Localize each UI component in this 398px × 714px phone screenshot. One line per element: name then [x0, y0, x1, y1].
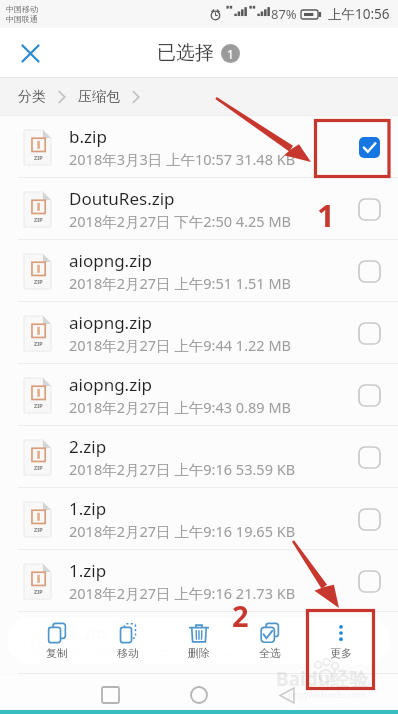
staticText: 上午10:56 [328, 5, 390, 23]
staticText: 1 [317, 194, 335, 236]
button[interactable]: 选择 [340, 612, 398, 674]
button[interactable]: 压缩包 [78, 88, 120, 106]
staticText: Baidu经验 [276, 666, 369, 692]
staticText: ZIP [34, 278, 43, 285]
button[interactable]: ZIP [0, 116, 398, 178]
button[interactable]: 分类 [18, 88, 46, 106]
staticText: ZIP [34, 588, 43, 595]
staticText: 2018年2月27日 下午2:50 4.25 MB [69, 211, 291, 231]
staticText: 已选择 [157, 41, 214, 65]
button[interactable]: 选择 [340, 116, 398, 178]
button[interactable]: 主页 [182, 678, 216, 712]
button[interactable]: 删除 [163, 617, 234, 664]
button[interactable]: ZIP [0, 302, 398, 364]
button[interactable]: 选择 [340, 550, 398, 612]
button[interactable]: 选择 [340, 240, 398, 302]
staticText: 2018年2月27日 上午9:43 0.89 MB [69, 397, 291, 417]
button[interactable]: ZIP [0, 178, 398, 240]
staticText: ZIP [34, 340, 43, 347]
staticText: 复制 [46, 646, 68, 660]
staticText: 中国移动 [6, 4, 38, 14]
button[interactable]: 选择 [340, 426, 398, 488]
staticText: 2018年2月27日 上午9:16 21.73 KB [69, 583, 296, 603]
button[interactable]: 关闭 [8, 31, 52, 75]
staticText: 1.zip [69, 497, 107, 520]
staticText: ZIP [34, 216, 43, 223]
staticText: 2018年2月27日 上午9:44 1.22 MB [69, 335, 291, 355]
staticText: ZIP [34, 464, 43, 471]
staticText: 2018年2月27日 上午9:16 19.65 KB [69, 521, 296, 541]
button[interactable]: 更多 [305, 617, 376, 664]
staticText: ZIP [34, 154, 43, 161]
button[interactable]: 选择 [340, 364, 398, 426]
staticText: 1 [227, 46, 234, 62]
button[interactable]: 全选 [234, 617, 305, 664]
button[interactable]: ZIP [0, 240, 398, 302]
button[interactable]: 移动 [92, 617, 163, 664]
button[interactable]: ZIP [0, 364, 398, 426]
button[interactable]: ZIP [0, 426, 398, 488]
button[interactable]: 选择 [340, 302, 398, 364]
staticText: aiopng.zip [69, 373, 153, 396]
staticText: 中国联通 [6, 14, 38, 24]
staticText: ZIP [34, 526, 43, 533]
button[interactable]: ZIP [0, 612, 398, 674]
staticText: 2018年2月27日 上午9:51 1.51 MB [69, 273, 291, 293]
button[interactable]: 选择 [340, 488, 398, 550]
staticText: aiopng.zip [69, 249, 153, 272]
staticText: DoutuRes.zip [69, 187, 175, 210]
staticText: 2 [232, 596, 249, 635]
staticText: 全选 [259, 646, 281, 660]
staticText: ZIP [34, 402, 43, 409]
button[interactable]: 选择 [340, 178, 398, 240]
staticText: 2.zip [69, 435, 107, 458]
staticText: 移动 [117, 646, 139, 660]
staticText: 2018年2月27日 上午9:16 10.12 KB [69, 645, 296, 665]
button[interactable]: 复制 [21, 617, 92, 664]
staticText: aiopng.zip [69, 311, 153, 334]
staticText: jingyan.baidu.com [288, 688, 366, 700]
staticText: 2018年3月3日 上午10:57 31.48 KB [69, 149, 296, 169]
staticText: 87% [271, 5, 297, 23]
staticText: 2018年2月27日 上午9:16 53.59 KB [69, 459, 296, 479]
button[interactable]: 返回 [270, 678, 304, 712]
staticText: 删除 [188, 646, 210, 660]
staticText: b.zip [69, 125, 107, 148]
staticText: 更多 [330, 646, 352, 660]
button[interactable]: ZIP [0, 550, 398, 612]
staticText: 1.zip [69, 559, 107, 582]
button[interactable]: 最近任务 [93, 678, 127, 712]
button[interactable]: ZIP [0, 488, 398, 550]
